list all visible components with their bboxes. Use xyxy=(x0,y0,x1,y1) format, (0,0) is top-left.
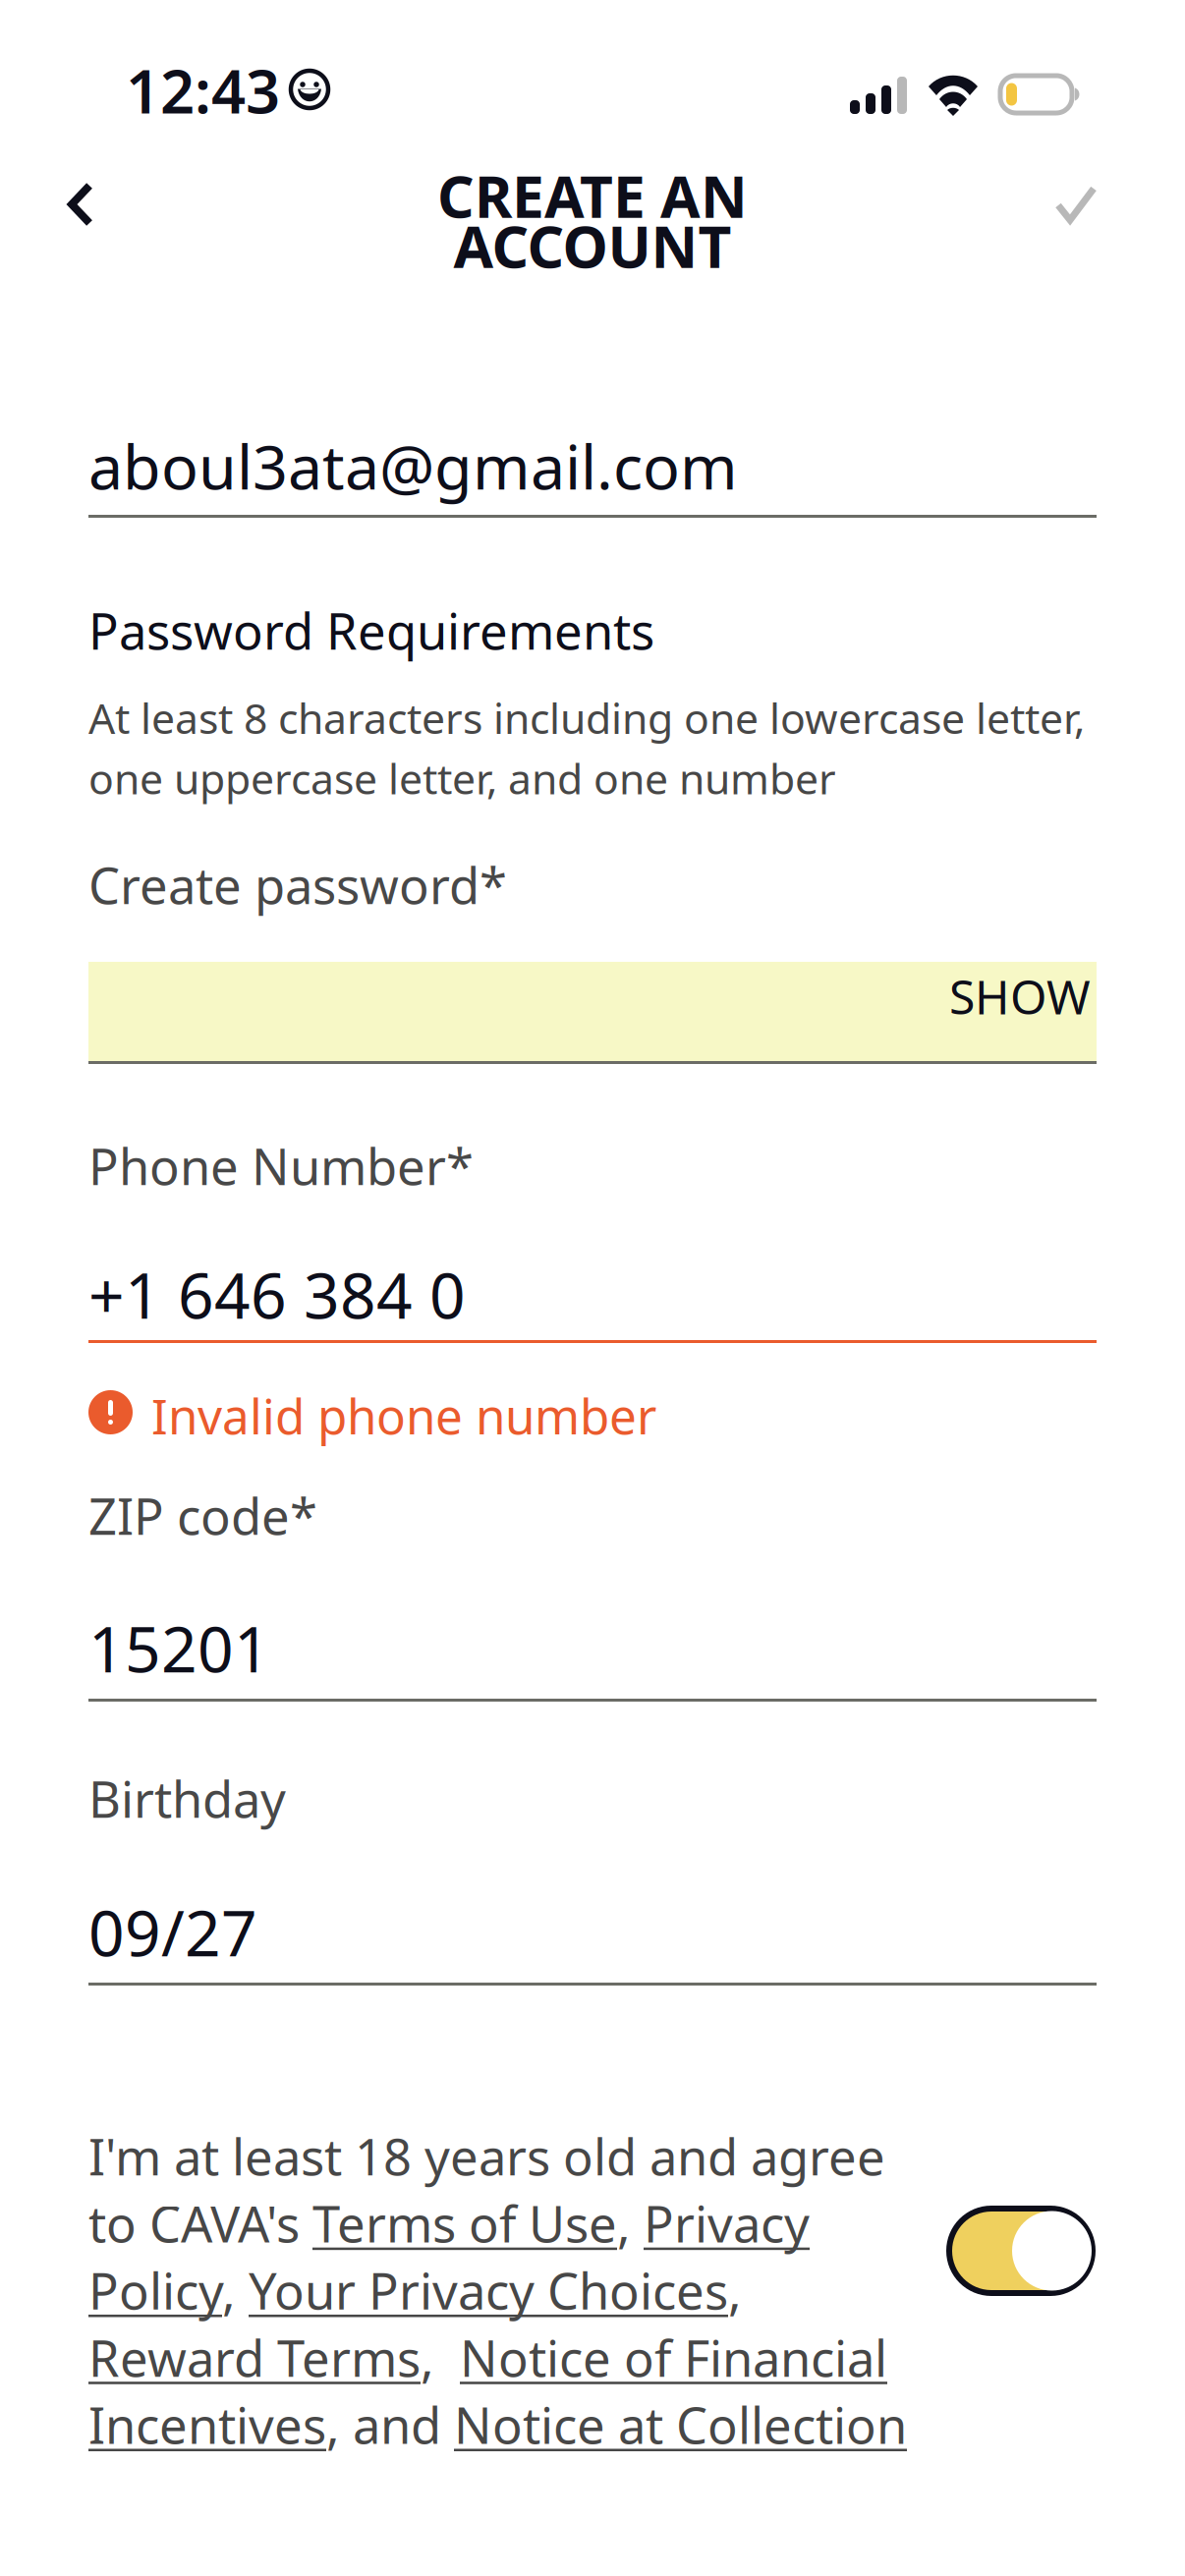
staticText: CREATE AN xyxy=(437,157,748,234)
staticText: 09/27 xyxy=(88,1890,257,1974)
button[interactable]: 09/27 xyxy=(88,1890,1097,1974)
staticText: Create password* xyxy=(88,852,507,918)
button[interactable]: aboul3ata@gmail.com xyxy=(88,424,1097,507)
staticText: I'm at least 18 years old and agree to C… xyxy=(88,2123,907,2458)
staticText: 15201 xyxy=(88,1606,270,1690)
button[interactable]: 15201 xyxy=(88,1606,1097,1690)
staticText: ACCOUNT xyxy=(453,207,732,284)
staticText: aboul3ata@gmail.com xyxy=(88,425,738,507)
staticText: Phone Number* xyxy=(88,1133,474,1199)
button[interactable]: Back xyxy=(31,155,130,253)
staticText: Invalid phone number xyxy=(151,1383,656,1448)
button[interactable]: Submit xyxy=(1027,155,1125,253)
button[interactable]: I am at least 18 years old and agree to … xyxy=(949,2209,1093,2293)
button[interactable]: +1 646 384 0 xyxy=(88,1253,1097,1336)
staticText: Birthday xyxy=(88,1765,286,1832)
staticText: 12:43 xyxy=(126,50,280,130)
button[interactable] xyxy=(88,962,1097,1061)
staticText: SHOW xyxy=(949,965,1091,1027)
staticText: ZIP code* xyxy=(88,1483,317,1549)
staticText: +1 646 384 0 xyxy=(88,1253,466,1336)
staticText: At least 8 characters including one lowe… xyxy=(88,690,1085,806)
staticText: Password Requirements xyxy=(88,597,654,663)
